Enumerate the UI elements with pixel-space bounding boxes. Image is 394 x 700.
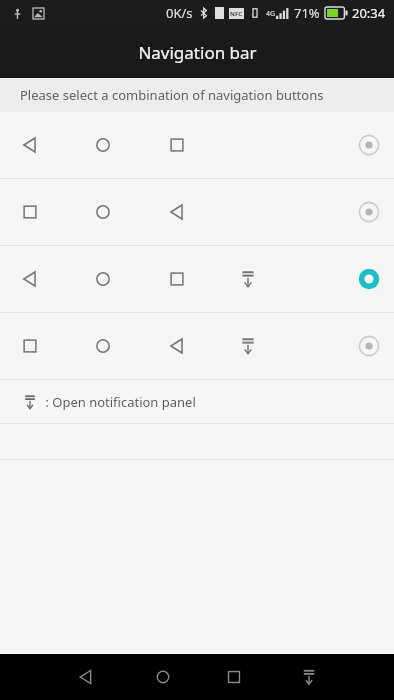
button[interactable]: Back — [70, 661, 102, 693]
staticText: 20:34 — [352, 4, 386, 22]
button[interactable]: Navigation button combination — [0, 179, 394, 245]
staticText: 4G — [266, 9, 276, 19]
staticText: Please select a combination of navigatio… — [20, 86, 324, 104]
button[interactable]: Home — [147, 661, 179, 693]
staticText: 71% — [294, 4, 320, 22]
staticText: 0K/s — [166, 4, 193, 22]
button[interactable]: Navigation button combination — [0, 313, 394, 379]
staticText: : Open notification panel — [42, 393, 196, 411]
button[interactable]: Open notification panel — [293, 661, 325, 693]
button[interactable]: Recent apps — [218, 661, 250, 693]
button[interactable]: Navigation button combination — [0, 112, 394, 178]
button[interactable]: Navigation button combination — [0, 246, 394, 312]
staticText: NFC — [230, 10, 243, 18]
staticText: Navigation bar — [138, 41, 257, 64]
